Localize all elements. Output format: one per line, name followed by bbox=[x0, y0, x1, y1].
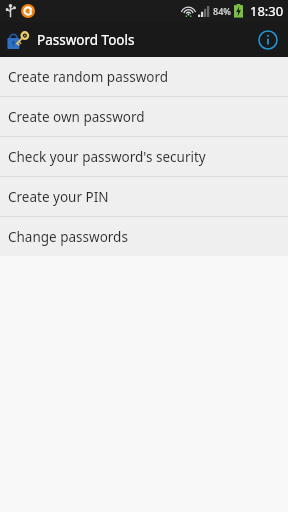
staticText: Password Tools bbox=[37, 31, 135, 49]
button[interactable]: Create random password bbox=[0, 57, 288, 96]
staticText: Create your PIN bbox=[8, 188, 109, 206]
button[interactable]: Create own password bbox=[0, 97, 288, 136]
button[interactable]: Create your PIN bbox=[0, 177, 288, 216]
button[interactable]: Change passwords bbox=[0, 217, 288, 256]
staticText: Change passwords bbox=[8, 228, 128, 246]
staticText: 18:30 bbox=[250, 2, 284, 20]
staticText: Create own password bbox=[8, 108, 145, 126]
button[interactable]: Check your password's security bbox=[0, 137, 288, 176]
staticText: Create random password bbox=[8, 68, 169, 86]
staticText: 84% bbox=[213, 5, 231, 17]
button[interactable]: About bbox=[254, 26, 282, 54]
staticText: Check your password's security bbox=[8, 148, 206, 166]
